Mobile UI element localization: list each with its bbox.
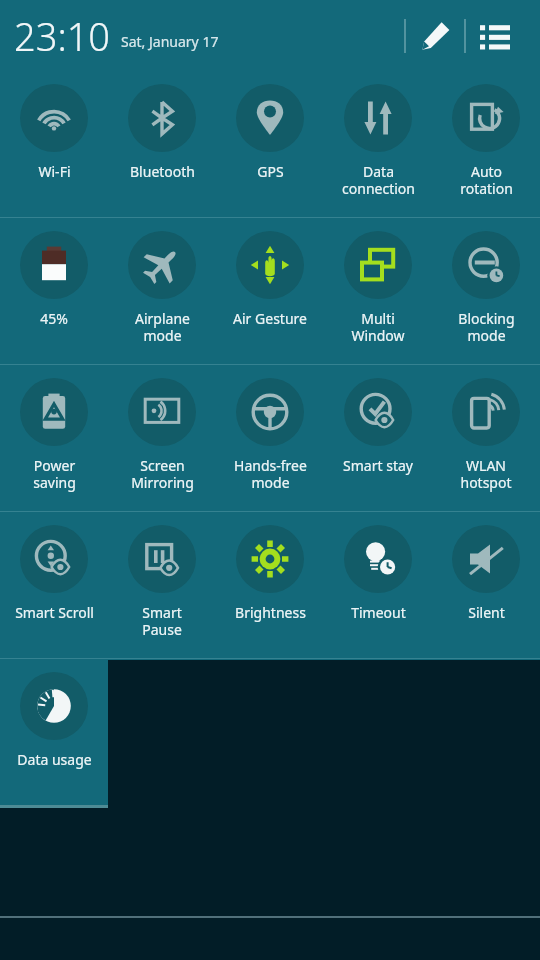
button[interactable]: Air Gesture (216, 219, 324, 364)
staticText: 23:10 (14, 10, 111, 62)
button[interactable]: Data connection (324, 72, 432, 217)
staticText: Brightness (235, 603, 306, 622)
staticText: Airplane mode (135, 309, 190, 345)
staticText: Smart stay (343, 456, 413, 475)
button[interactable]: Timeout (324, 513, 432, 658)
button[interactable]: Smart Pause (108, 513, 216, 658)
staticText: Air Gesture (233, 309, 307, 328)
staticText: Screen Mirroring (131, 456, 194, 492)
button[interactable]: Power saving (0, 366, 108, 511)
staticText: Power saving (33, 456, 76, 492)
button[interactable]: GPS (216, 72, 324, 217)
staticText: Timeout (351, 603, 406, 622)
staticText: Data connection (342, 162, 415, 198)
button[interactable]: Screen Mirroring (108, 366, 216, 511)
button[interactable]: Auto rotation (432, 72, 540, 217)
button[interactable]: WLAN hotspot (432, 366, 540, 511)
staticText: Hands-free mode (234, 456, 307, 492)
staticText: Multi Window (351, 309, 405, 345)
button[interactable]: Smart Scroll (0, 513, 108, 658)
button[interactable]: Edit (406, 7, 464, 65)
button[interactable]: Airplane mode (108, 219, 216, 364)
staticText: Sat, January 17 (121, 32, 219, 51)
staticText: Smart Scroll (15, 603, 94, 622)
staticText: WLAN hotspot (460, 456, 512, 492)
button[interactable]: Multi Window (324, 219, 432, 364)
button[interactable]: Wi-Fi (0, 72, 108, 217)
staticText: Auto rotation (460, 162, 513, 198)
staticText: Smart Pause (142, 603, 182, 639)
button[interactable]: Silent (432, 513, 540, 658)
staticText: Blocking mode (458, 309, 515, 345)
staticText: Data usage (17, 750, 92, 769)
staticText: Wi-Fi (38, 162, 71, 181)
button[interactable]: Hands-free mode (216, 366, 324, 511)
staticText: Bluetooth (130, 162, 195, 181)
button[interactable]: Brightness (216, 513, 324, 658)
button[interactable]: Smart stay (324, 366, 432, 511)
button[interactable]: 45% (0, 219, 108, 364)
staticText: 45% (40, 309, 68, 328)
staticText: Silent (468, 603, 505, 622)
button[interactable]: List (466, 7, 524, 65)
button[interactable]: Data usage (0, 660, 108, 805)
button[interactable]: Blocking mode (432, 219, 540, 364)
staticText: GPS (257, 162, 284, 181)
button[interactable]: Bluetooth (108, 72, 216, 217)
